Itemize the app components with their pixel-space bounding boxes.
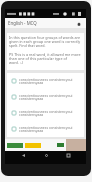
button[interactable]: English - MCQ — [5, 18, 86, 28]
staticText: conscientiousness consistencyoui consist… — [19, 93, 82, 101]
button[interactable]: Home — [74, 19, 83, 28]
button[interactable]: conscientiousness consistencyoui consist… — [7, 105, 84, 121]
staticText: PS This is a real word, it allowed me mo… — [9, 52, 81, 65]
staticText: conscientiousness consistencyoui consist… — [19, 125, 82, 133]
button[interactable]: conscientiousness consistencyoui consist… — [7, 89, 84, 105]
staticText: In this question four groups of words ar… — [9, 35, 81, 48]
staticText: English - MCQ — [8, 20, 37, 26]
button[interactable]: conscientiousness consistencyoui consist… — [7, 121, 84, 137]
button[interactable]: Back — [18, 151, 28, 160]
staticText: conscientiousness consistencyoui consist… — [19, 109, 82, 117]
button[interactable]: Recents — [63, 151, 73, 160]
button[interactable]: conscientiousness consistencyoui consist… — [7, 73, 84, 89]
button[interactable] — [5, 139, 86, 151]
button[interactable]: Home — [41, 151, 51, 160]
staticText: conscientiousness consistencyoui consist… — [19, 77, 82, 85]
